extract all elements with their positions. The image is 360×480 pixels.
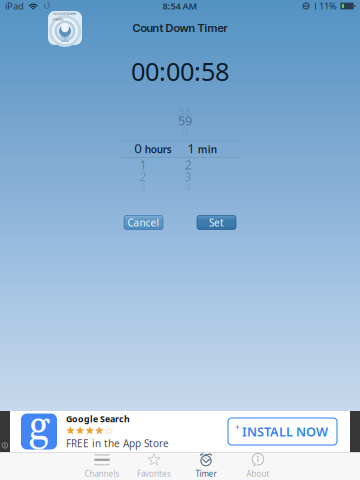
staticText: Google Search [66, 413, 130, 425]
staticText: 11% [319, 0, 337, 12]
staticText: hours [145, 142, 172, 156]
staticText: Favorites [137, 468, 171, 479]
staticText: About [246, 468, 269, 479]
staticText: 0 [182, 125, 188, 140]
staticText: Set [209, 216, 224, 229]
staticText: 58 [179, 105, 191, 118]
staticText: 2 [184, 156, 191, 173]
staticText: 3 [140, 181, 146, 194]
staticText: min [198, 142, 217, 156]
staticText: 1 [187, 139, 195, 157]
staticText: Channels [84, 468, 119, 479]
button[interactable]: About [232, 452, 284, 479]
staticText: 00:00:58 [131, 54, 229, 88]
staticText: INSTALL NOW [242, 423, 328, 440]
staticText: iPad [5, 0, 24, 12]
staticText: 1 [139, 156, 146, 173]
staticText: Cancel [127, 216, 159, 229]
button[interactable]: Cancel [124, 215, 163, 229]
button[interactable]: Timer [180, 452, 232, 479]
staticText: 2 [139, 168, 146, 185]
button[interactable]: Channels [76, 452, 128, 479]
staticText: 59 [178, 112, 192, 129]
staticText: 4 [185, 181, 191, 194]
staticText: 0 [134, 139, 142, 157]
button[interactable]: Set [197, 215, 236, 229]
button[interactable]: Favorites [128, 452, 180, 479]
staticText: countdown radio [53, 10, 77, 22]
staticText: + [235, 422, 240, 433]
staticText: FREE in the App Store [66, 436, 169, 450]
staticText: Timer [195, 468, 216, 479]
staticText: 8:54 AM [162, 0, 197, 12]
staticText: 3 [184, 168, 191, 185]
button[interactable]: + [228, 418, 337, 445]
staticText: Count Down Timer [132, 21, 227, 35]
staticText: g [28, 401, 49, 454]
